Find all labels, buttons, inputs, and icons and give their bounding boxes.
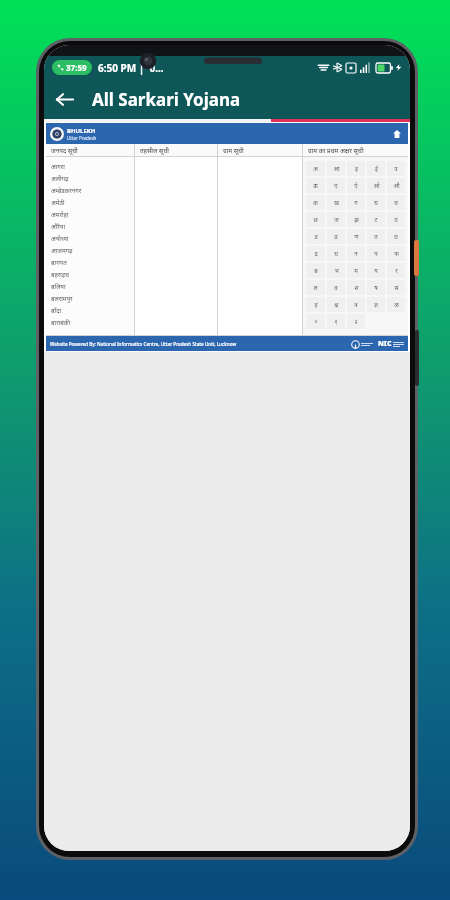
- button[interactable]: २: [347, 314, 365, 329]
- button[interactable]: ह: [306, 297, 325, 312]
- staticText: थ: [394, 233, 398, 241]
- staticText: भ: [334, 267, 339, 275]
- staticText: ल: [313, 284, 318, 292]
- button[interactable]: अयोध्या: [51, 232, 134, 244]
- staticText: त्र: [354, 301, 358, 309]
- button[interactable]: अम्बेडकरनगर: [51, 184, 134, 196]
- button[interactable]: बलरामपुर: [51, 292, 134, 304]
- button[interactable]: बागपत: [51, 256, 134, 268]
- button[interactable]: ल: [306, 280, 325, 295]
- button[interactable]: न: [347, 246, 365, 261]
- button[interactable]: Back: [44, 79, 84, 119]
- button[interactable]: य: [367, 263, 385, 278]
- button[interactable]: औ: [387, 178, 405, 193]
- button[interactable]: त्र: [347, 297, 365, 312]
- button[interactable]: क्ष: [327, 297, 345, 312]
- staticText: फ: [394, 250, 399, 258]
- button[interactable]: अमेठी: [51, 196, 134, 208]
- button[interactable]: अ: [306, 161, 325, 176]
- staticText: ग्राम का प्रथम अक्षर सूची: [308, 146, 364, 154]
- staticText: ज्ञ: [374, 301, 378, 309]
- staticText: घ: [374, 199, 378, 207]
- button[interactable]: ठ: [387, 212, 405, 227]
- button[interactable]: ढ: [327, 229, 345, 244]
- button[interactable]: ई: [367, 161, 385, 176]
- button[interactable]: ए: [327, 178, 345, 193]
- button[interactable]: र: [387, 263, 405, 278]
- button[interactable]: Ongoing call: [57, 60, 87, 75]
- button[interactable]: व: [327, 280, 345, 295]
- staticText: अलीगढ़: [51, 174, 69, 182]
- button[interactable]: बाराबंकी: [51, 316, 134, 328]
- staticText: य: [374, 267, 378, 275]
- staticText: च: [394, 199, 398, 207]
- button[interactable]: ळ: [387, 297, 405, 312]
- button[interactable]: अलीगढ़: [51, 172, 134, 184]
- button[interactable]: द: [306, 246, 325, 261]
- button[interactable]: च: [387, 195, 405, 210]
- button[interactable]: ट: [367, 212, 385, 227]
- button[interactable]: बाँदा: [51, 304, 134, 316]
- staticText: ऊ: [313, 182, 318, 190]
- button[interactable]: ऐ: [347, 178, 365, 193]
- button[interactable]: आगरा: [51, 160, 134, 172]
- button[interactable]: आजमगढ़: [51, 244, 134, 256]
- staticText: क्ष: [334, 301, 339, 309]
- button[interactable]: छ: [306, 212, 325, 227]
- button[interactable]: ब: [306, 263, 325, 278]
- button[interactable]: श: [347, 280, 365, 295]
- staticText: ळ: [394, 301, 399, 309]
- button[interactable]: ख: [327, 195, 345, 210]
- button[interactable]: झ: [347, 212, 365, 227]
- button[interactable]: औरैया: [51, 220, 134, 232]
- button[interactable]: स: [387, 280, 405, 295]
- button[interactable]: त: [367, 229, 385, 244]
- staticText: आजमगढ़: [51, 246, 73, 254]
- button[interactable]: थ: [387, 229, 405, 244]
- button[interactable]: १: [327, 314, 345, 329]
- button[interactable]: इ: [347, 161, 365, 176]
- button[interactable]: म: [347, 263, 365, 278]
- staticText: स: [394, 284, 399, 292]
- staticText: ग्राम सूची: [223, 146, 244, 154]
- button[interactable]: ण: [347, 229, 365, 244]
- staticText: Uttar Pradesh: [67, 135, 97, 141]
- button[interactable]: उ: [387, 161, 405, 176]
- staticText: तहसील सूची: [140, 146, 169, 154]
- button[interactable]: ०: [306, 314, 325, 329]
- button[interactable]: घ: [367, 195, 385, 210]
- button[interactable]: बलिया: [51, 280, 134, 292]
- button[interactable]: ध: [327, 246, 345, 261]
- staticText: बाराबंकी: [51, 318, 71, 326]
- staticText: ण: [354, 233, 359, 241]
- button[interactable]: ड: [306, 229, 325, 244]
- button[interactable]: ओ: [367, 178, 385, 193]
- staticText: छ: [313, 216, 318, 224]
- button[interactable]: ग: [347, 195, 365, 210]
- staticText: ष: [374, 284, 378, 292]
- button[interactable]: Home: [390, 127, 404, 141]
- staticText: NIC: [378, 339, 392, 349]
- staticText: ढ: [334, 233, 338, 241]
- button[interactable]: प: [367, 246, 385, 261]
- button[interactable]: क: [306, 195, 325, 210]
- staticText: उ: [394, 165, 398, 173]
- staticText: इ: [355, 165, 358, 173]
- staticText: त: [374, 233, 378, 241]
- staticText: ऐ: [354, 182, 358, 190]
- button[interactable]: ष: [367, 280, 385, 295]
- button[interactable]: ज्ञ: [367, 297, 385, 312]
- button[interactable]: बहराइच: [51, 268, 134, 280]
- staticText: ओ: [373, 182, 380, 190]
- button[interactable]: फ: [387, 246, 405, 261]
- staticText: द: [314, 250, 318, 258]
- staticText: आगरा: [51, 162, 65, 170]
- button[interactable]: आ: [327, 161, 345, 176]
- staticText: ख: [334, 199, 339, 207]
- button[interactable]: ऊ: [306, 178, 325, 193]
- staticText: झ: [354, 216, 359, 224]
- staticText: ध: [334, 250, 338, 258]
- button[interactable]: अमरोहा: [51, 208, 134, 220]
- button[interactable]: भ: [327, 263, 345, 278]
- button[interactable]: ज: [327, 212, 345, 227]
